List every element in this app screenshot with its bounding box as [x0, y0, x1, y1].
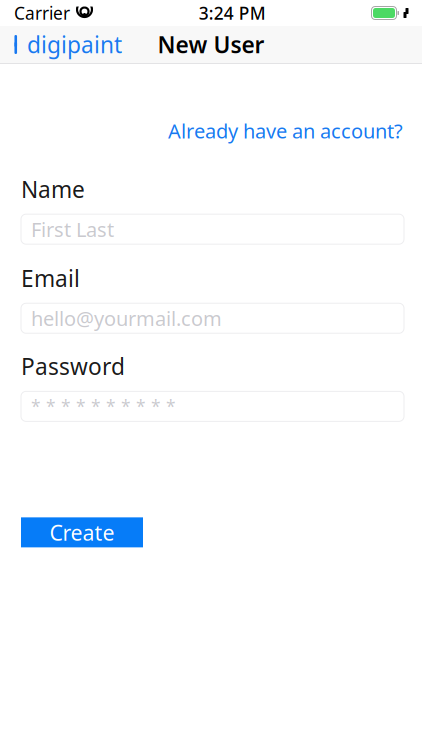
staticText: Password — [21, 351, 125, 381]
staticText: Create — [49, 518, 114, 546]
staticText: 3:24 PM — [199, 1, 266, 24]
staticText: hello@yourmail.com — [31, 305, 222, 332]
staticText: Already have an account? — [168, 117, 403, 144]
staticText: First Last — [31, 216, 114, 242]
staticText: Name — [21, 174, 85, 204]
button[interactable]: Create — [21, 517, 143, 547]
button[interactable]: Already have an account? — [168, 113, 403, 148]
staticText: digipaint — [27, 29, 122, 59]
staticText: Email — [21, 263, 80, 293]
staticText: Carrier — [14, 1, 70, 24]
staticText: New User — [157, 29, 264, 59]
staticText: * * * * * * * * * * — [31, 395, 176, 418]
button[interactable]: digipaint — [0, 23, 130, 65]
